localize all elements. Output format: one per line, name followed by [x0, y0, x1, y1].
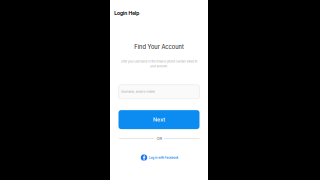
- staticText: Login Help: [26, 0, 227, 38]
- staticText: your account.: [89, 53, 229, 79]
- staticText: Username, email or mobile: [2, 79, 274, 105]
- button[interactable]: Log in with Facebook: [141, 154, 178, 161]
- button[interactable]: Login Help: [114, 10, 139, 16]
- staticText: Find Your Account: [0, 20, 320, 74]
- staticText: Log in with Facebook: [47, 144, 280, 171]
- staticText: Next: [110, 93, 208, 146]
- button[interactable]: Username, email or mobile: [118, 85, 199, 99]
- staticText: OR: [136, 119, 182, 158]
- staticText: Enter your username or the email or phon…: [0, 48, 320, 75]
- button[interactable]: Next: [118, 110, 199, 129]
